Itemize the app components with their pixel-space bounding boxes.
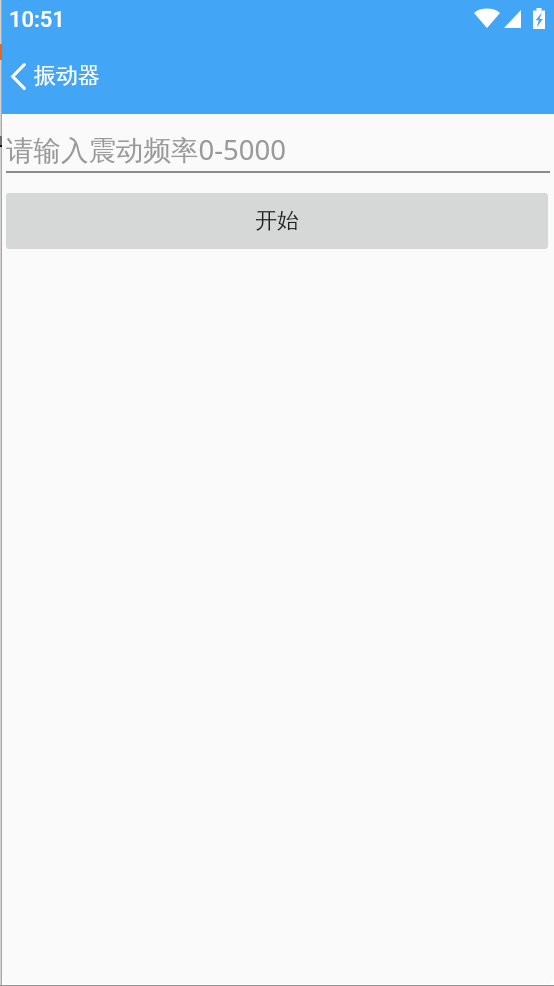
button[interactable]: Back <box>2 54 112 98</box>
staticText: 振动器 <box>34 62 100 90</box>
button[interactable]: 开始 <box>6 193 548 249</box>
staticText: 开始 <box>255 207 299 235</box>
staticText: 请输入震动频率0-5000 <box>6 131 287 169</box>
other: Signal <box>504 10 521 28</box>
button[interactable]: 请输入震动频率0-5000 <box>2 123 554 171</box>
other: Battery charging <box>533 8 545 29</box>
staticText: 10:51 <box>9 7 65 33</box>
other: Back <box>11 63 26 90</box>
other: Wi-Fi <box>474 10 500 28</box>
